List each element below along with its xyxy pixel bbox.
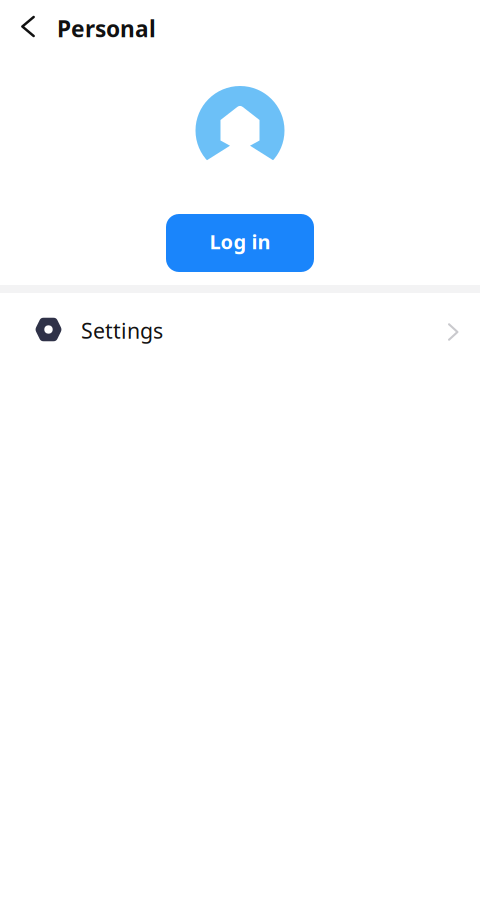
button[interactable]: Log in <box>166 214 314 272</box>
staticText: Log in <box>209 228 270 255</box>
button[interactable]: Back <box>6 4 50 48</box>
button[interactable]: Settings <box>0 293 480 368</box>
staticText: Settings <box>81 316 163 345</box>
staticText: Personal <box>57 13 156 43</box>
